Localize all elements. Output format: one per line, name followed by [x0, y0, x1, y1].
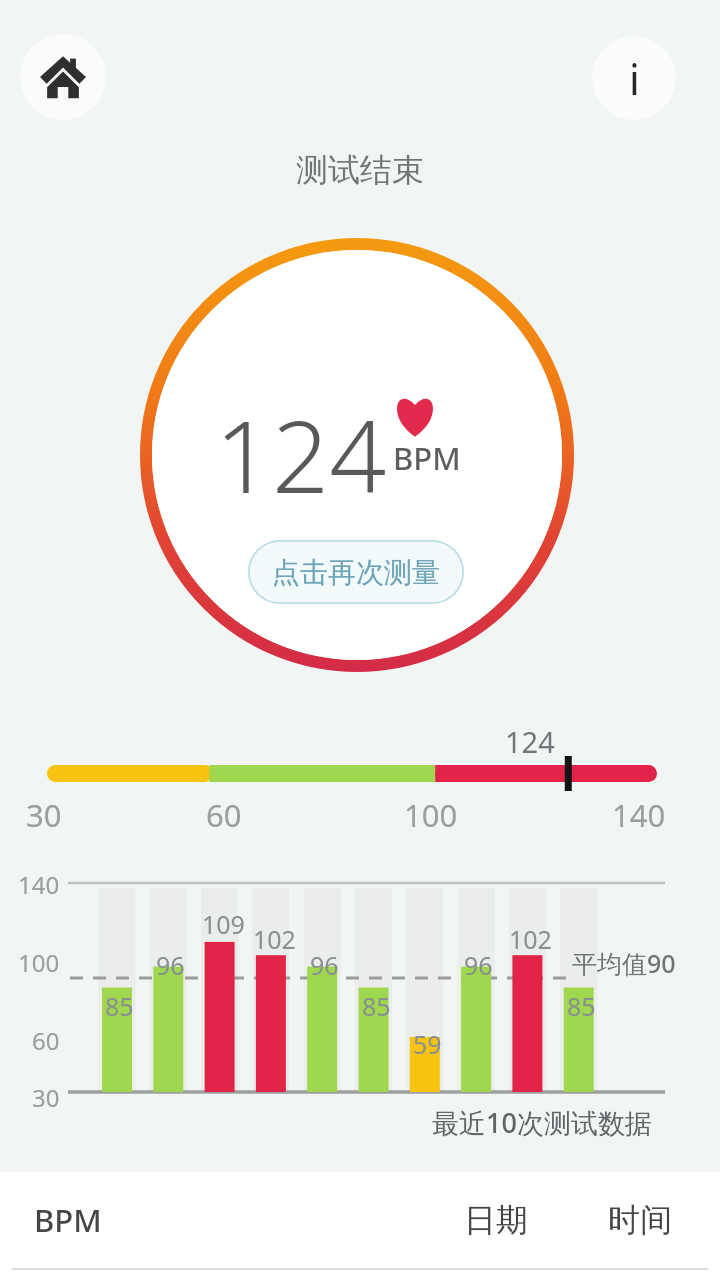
staticText: 124 [215, 386, 387, 522]
staticText: 85 [105, 989, 134, 1023]
staticText: 85 [567, 989, 596, 1023]
staticText: 最近10次测试数据 [432, 1104, 652, 1141]
staticText: 102 [253, 922, 296, 956]
staticText: 140 [612, 794, 666, 836]
button[interactable]: Info [592, 36, 676, 120]
staticText: 109 [202, 907, 245, 941]
staticText: BPM [393, 437, 461, 479]
staticText: 96 [310, 948, 339, 982]
staticText: 102 [509, 922, 552, 956]
staticText: 点击再次测量 [272, 555, 440, 590]
staticText: 140 [18, 868, 60, 901]
staticText: 100 [404, 794, 458, 836]
staticText: 124 [505, 722, 555, 761]
staticText: 30 [26, 794, 62, 836]
staticText: 时间 [608, 1200, 672, 1240]
staticText: 60 [206, 794, 242, 836]
staticText: 96 [156, 948, 185, 982]
staticText: i [629, 50, 640, 107]
staticText: 100 [18, 946, 60, 979]
button[interactable]: BPM [0, 1172, 720, 1267]
button[interactable]: 点击再次测量 [248, 540, 464, 604]
staticText: 平均值90 [572, 946, 676, 980]
staticText: BPM [34, 1199, 102, 1241]
staticText: 85 [362, 989, 391, 1023]
staticText: 96 [464, 948, 493, 982]
staticText: 60 [32, 1024, 60, 1057]
staticText: 日期 [464, 1200, 528, 1240]
button[interactable]: Home [20, 34, 106, 120]
staticText: 59 [413, 1027, 442, 1061]
staticText: 30 [32, 1081, 60, 1114]
staticText: 测试结束 [296, 150, 424, 190]
